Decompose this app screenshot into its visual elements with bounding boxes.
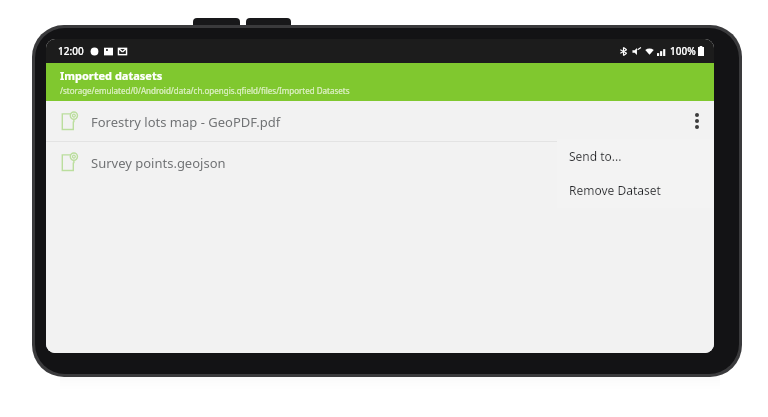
button[interactable]: Remove Dataset [557, 173, 714, 207]
button[interactable]: More options [680, 101, 714, 141]
button[interactable]: Survey points.geojson [46, 142, 714, 182]
staticText: Imported datasets [60, 68, 163, 83]
staticText: 12:00 [58, 44, 84, 58]
staticText: 100% [670, 44, 696, 58]
staticText: Remove Dataset [569, 182, 661, 198]
staticText: Forestry lots map - GeoPDF.pdf [91, 113, 281, 131]
staticText: Send to... [569, 148, 622, 164]
button[interactable]: Send to... [557, 139, 714, 173]
staticText: Survey points.geojson [91, 154, 226, 172]
button[interactable]: Forestry lots map - GeoPDF.pdf [46, 101, 714, 141]
staticText: /storage/emulated/0/Android/data/ch.open… [60, 85, 350, 96]
